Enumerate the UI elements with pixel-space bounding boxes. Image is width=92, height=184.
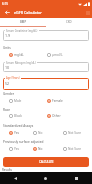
staticText: Results xyxy=(2,168,12,172)
button[interactable]: Not Sure xyxy=(63,147,82,151)
staticText: Units xyxy=(3,46,11,50)
staticText: Race xyxy=(3,108,11,112)
button[interactable]: No xyxy=(33,147,43,151)
staticText: 1.9 xyxy=(5,33,11,38)
button[interactable]: µmol/L xyxy=(47,53,63,57)
button[interactable]: Home xyxy=(30,172,61,184)
button[interactable]: Other xyxy=(47,114,61,118)
staticText: Gender xyxy=(3,92,14,96)
staticText: BMP xyxy=(20,20,27,24)
staticText: Serum Nitrogen (mg/dL) xyxy=(6,61,36,65)
staticText: Previously surface adjusted xyxy=(3,140,44,144)
button[interactable]: No xyxy=(33,131,43,135)
button[interactable]: Female xyxy=(47,99,63,103)
button[interactable] xyxy=(3,30,89,41)
button[interactable]: Back xyxy=(3,7,12,18)
staticText: Standardized Assays xyxy=(3,124,34,128)
staticText: Other xyxy=(52,114,61,118)
staticText: Male xyxy=(14,99,22,103)
staticText: 10 xyxy=(5,65,10,70)
button[interactable]: Not Sure xyxy=(63,131,82,135)
staticText: Not Sure xyxy=(68,131,82,135)
button[interactable]: More options xyxy=(84,9,91,16)
button[interactable]: Yes xyxy=(9,131,19,135)
staticText: Not Sure xyxy=(68,147,82,151)
button[interactable]: CALCULATE xyxy=(3,157,89,167)
button[interactable] xyxy=(3,62,89,72)
staticText: Yes xyxy=(14,147,19,151)
button[interactable]: mg/dL xyxy=(9,53,24,57)
staticText: Serum Creatinine (mg/dL) xyxy=(6,29,38,33)
staticText: Female xyxy=(52,99,63,103)
staticText: mg/dL xyxy=(14,53,24,57)
button[interactable]: Male xyxy=(9,99,22,103)
staticText: 6:15 xyxy=(2,2,8,6)
staticText: Age (Years) xyxy=(6,76,20,80)
staticText: CALCULATE xyxy=(39,160,54,164)
staticText: µmol/L xyxy=(52,53,63,57)
staticText: CKD xyxy=(66,20,72,24)
staticText: Yes xyxy=(14,131,19,135)
button[interactable]: CKD xyxy=(46,18,92,26)
staticText: Black xyxy=(14,114,22,118)
staticText: No xyxy=(38,131,43,135)
button[interactable]: Yes xyxy=(9,147,19,151)
button[interactable]: Recents xyxy=(61,172,92,184)
staticText: 52 xyxy=(5,81,10,86)
button[interactable]: BMP xyxy=(0,18,46,26)
button[interactable]: Back xyxy=(0,172,30,184)
button[interactable]: Black xyxy=(9,114,22,118)
staticText: eGFR Calculator xyxy=(14,10,42,15)
button[interactable] xyxy=(3,78,89,90)
staticText: No xyxy=(38,147,43,151)
